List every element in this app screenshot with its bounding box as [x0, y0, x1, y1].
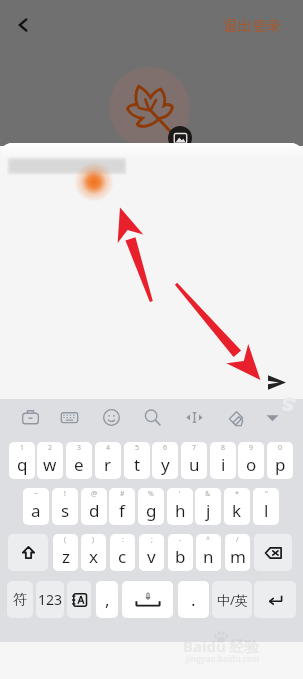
button[interactable]: Search	[136, 401, 168, 433]
staticText: )	[92, 535, 95, 545]
staticText: i	[221, 453, 226, 476]
button[interactable]: ;	[139, 534, 164, 571]
button[interactable]: Change photo	[168, 126, 192, 150]
button[interactable]: Back	[6, 8, 40, 42]
staticText: 5	[135, 443, 140, 453]
staticText: 9	[249, 443, 254, 453]
staticText: x	[89, 545, 98, 568]
button[interactable]: Send	[262, 367, 292, 397]
staticText: &	[205, 489, 211, 499]
staticText: (	[64, 535, 67, 545]
button[interactable]: 退出登录	[223, 17, 281, 35]
button[interactable]: 符	[7, 581, 33, 618]
button[interactable]: "	[253, 488, 279, 525]
button[interactable]: 7	[181, 442, 207, 479]
staticText: r	[104, 453, 112, 476]
staticText: b	[175, 545, 186, 568]
staticText: 4	[106, 443, 111, 453]
staticText: *	[235, 489, 239, 499]
staticText: /	[236, 535, 239, 545]
button[interactable]: Clipboard	[14, 401, 46, 433]
staticText: .	[191, 588, 196, 611]
button[interactable]: 8	[210, 442, 236, 479]
staticText: 符	[13, 591, 27, 609]
button[interactable]: ~	[23, 488, 49, 525]
button[interactable]: -	[168, 534, 193, 571]
staticText: ^	[206, 535, 211, 545]
staticText: q	[17, 453, 28, 476]
staticText: 中/英	[217, 591, 248, 609]
button[interactable]: 0	[267, 442, 293, 479]
staticText: :	[122, 535, 124, 545]
staticText: j	[206, 499, 211, 522]
staticText: a	[31, 499, 41, 522]
button[interactable]: Keyboard	[53, 401, 85, 433]
button[interactable]: &	[195, 488, 221, 525]
staticText: m	[230, 545, 246, 568]
button[interactable]: shift	[8, 534, 48, 571]
button[interactable]: 1	[9, 442, 35, 479]
button[interactable]: '	[167, 488, 193, 525]
button[interactable]: *	[224, 488, 250, 525]
button[interactable]: enter	[254, 581, 296, 618]
staticText: l	[264, 499, 269, 522]
button[interactable]: lang	[67, 581, 91, 618]
button[interactable]: ^	[196, 534, 221, 571]
staticText: ,	[105, 588, 110, 611]
button[interactable]: 9	[238, 442, 264, 479]
button[interactable]: :	[110, 534, 135, 571]
button[interactable]: Cursor	[178, 401, 210, 433]
staticText: ;	[151, 535, 153, 545]
staticText: y	[161, 453, 170, 476]
button[interactable]: 中/英	[212, 581, 252, 618]
button[interactable]: 5	[124, 442, 150, 479]
button[interactable]: 123	[36, 581, 64, 618]
button[interactable]: .	[178, 581, 209, 618]
staticText: v	[147, 545, 156, 568]
staticText: 123	[38, 590, 63, 609]
staticText: '	[179, 489, 181, 499]
button[interactable]: Emoji	[95, 401, 127, 433]
staticText: "	[265, 489, 268, 499]
staticText: 6	[163, 443, 168, 453]
button[interactable]: (	[53, 534, 78, 571]
staticText: 0	[278, 443, 283, 453]
button[interactable]: 3	[66, 442, 92, 479]
button[interactable]: )	[81, 534, 106, 571]
staticText: g	[146, 499, 157, 522]
staticText: @	[91, 489, 98, 499]
staticText: d	[89, 499, 100, 522]
staticText: -	[179, 535, 182, 545]
button[interactable]: More	[256, 401, 288, 433]
staticText: o	[246, 453, 257, 476]
staticText: f	[119, 499, 125, 522]
staticText: jingyan.baidu.com	[186, 653, 260, 664]
button[interactable]: 6	[152, 442, 178, 479]
staticText: %	[148, 489, 154, 499]
staticText: s	[61, 499, 70, 522]
staticText: k	[232, 499, 242, 522]
button[interactable]: space	[122, 581, 173, 618]
button[interactable]: backspace	[254, 534, 292, 571]
staticText: 7	[192, 443, 197, 453]
button[interactable]: Theme	[220, 401, 252, 433]
button[interactable]: ,	[96, 581, 118, 618]
staticText: t	[134, 453, 141, 476]
staticText: 1	[20, 443, 25, 453]
button[interactable]: 4	[95, 442, 121, 479]
staticText: 2	[48, 443, 53, 453]
button[interactable]: !	[52, 488, 78, 525]
button[interactable]: /	[225, 534, 250, 571]
staticText: p	[275, 453, 286, 476]
staticText: u	[189, 453, 200, 476]
button[interactable]: 2	[37, 442, 63, 479]
staticText: #	[120, 489, 125, 499]
staticText: 8	[221, 443, 226, 453]
button[interactable]: @	[81, 488, 107, 525]
staticText: w	[43, 453, 57, 476]
staticText: Baidu 经验	[183, 636, 260, 656]
button[interactable]: #	[109, 488, 135, 525]
button[interactable]: %	[138, 488, 164, 525]
staticText: h	[175, 499, 186, 522]
staticText: !	[64, 489, 66, 499]
